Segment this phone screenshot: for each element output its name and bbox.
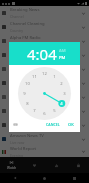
button[interactable]: World Report: [0, 146, 89, 157]
button[interactable]: Breaking News: [0, 6, 89, 20]
button[interactable]: Morning Show: [0, 104, 89, 118]
staticText: 11: [32, 74, 37, 80]
staticText: 8: [26, 101, 29, 107]
button[interactable]: Watch: [0, 157, 23, 173]
button[interactable]: Expand: [81, 11, 86, 16]
staticText: PM: [59, 55, 66, 61]
button[interactable]: Expand: [81, 67, 86, 72]
staticText: 9: [23, 91, 26, 97]
button[interactable]: Smart Thermostat: [0, 48, 89, 62]
button[interactable]: Expand: [81, 123, 86, 128]
staticText: 6: [43, 111, 46, 117]
staticText: Country: [10, 28, 24, 33]
staticText: Morning Show: [10, 105, 39, 111]
button[interactable]: Expand: [81, 39, 86, 44]
staticText: Channel: [10, 14, 24, 19]
button[interactable]: PM: [59, 55, 66, 61]
staticText: Garage Opener: [10, 77, 41, 83]
staticText: 1: [53, 74, 56, 80]
staticText: 5: [53, 108, 56, 114]
staticText: Evening: [10, 153, 24, 157]
staticText: Amazon News TV: [10, 133, 44, 139]
staticText: 2: [60, 81, 63, 87]
button[interactable]: Front Door Lock: [0, 62, 89, 76]
button[interactable]: Expand: [81, 25, 86, 30]
button[interactable]: Back: [0, 173, 29, 183]
button[interactable]: Amazon News TV: [0, 132, 89, 146]
button[interactable]: Recents: [59, 173, 89, 183]
button[interactable]: Expand: [81, 95, 86, 100]
button[interactable]: Expand: [81, 81, 86, 86]
button[interactable]: Expand: [81, 109, 86, 114]
button[interactable]: Channel Cleaning: [0, 20, 89, 34]
staticText: Front Door Lock: [10, 63, 42, 69]
staticText: OK: [68, 122, 74, 127]
button[interactable]: Alpha FM Radio: [0, 34, 89, 48]
button[interactable]: Home: [29, 173, 59, 183]
staticText: Channel Cleaning: [10, 21, 45, 27]
staticText: 72 degrees: [10, 56, 29, 61]
button[interactable]: Tab 3: [67, 157, 89, 173]
staticText: 12: [42, 71, 47, 77]
staticText: World Report: [10, 146, 37, 152]
button[interactable]: 4:04: [27, 44, 57, 64]
button[interactable]: Switch to text input: [13, 122, 18, 127]
staticText: Breaking News: [10, 7, 40, 13]
staticText: Live now: [10, 140, 25, 145]
staticText: Alpha FM Radio: [10, 35, 41, 41]
button[interactable]: OK: [66, 121, 76, 128]
staticText: AM: [59, 48, 66, 54]
button[interactable]: Expand: [81, 53, 86, 58]
button[interactable]: Weather Update: [0, 118, 89, 132]
staticText: Kitchen Speaker: [10, 91, 42, 97]
staticText: Watch: [7, 166, 17, 170]
button[interactable]: CANCEL: [44, 121, 62, 128]
staticText: Weather Update: [10, 119, 43, 125]
button[interactable]: Garage Opener: [0, 76, 89, 90]
button[interactable]: Kitchen Speaker: [0, 90, 89, 104]
button[interactable]: Tab 1: [23, 157, 45, 173]
button[interactable]: AM: [59, 48, 66, 54]
staticText: Smart Thermostat: [10, 49, 46, 55]
staticText: 4:04: [27, 44, 57, 64]
button[interactable]: Tab 2: [45, 157, 67, 173]
staticText: CANCEL: [46, 122, 60, 127]
staticText: 7: [33, 108, 36, 114]
staticText: Closed: [10, 84, 22, 89]
staticText: 3: [63, 91, 66, 97]
staticText: 4: [60, 101, 63, 107]
button[interactable]: Expand: [81, 137, 86, 142]
staticText: 10: [25, 81, 30, 87]
button[interactable]: Expand: [81, 149, 86, 154]
